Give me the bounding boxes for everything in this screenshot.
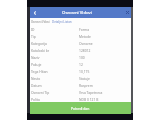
staticText: Statuje <box>79 76 90 80</box>
staticText: Rasprem <box>79 83 93 87</box>
staticText: Forma <box>79 27 89 31</box>
button[interactable]: Osnovni Vidovi <box>31 20 50 24</box>
button[interactable]: Tip <box>30 32 131 39</box>
staticText: Kataloski br <box>31 48 50 52</box>
button[interactable]: ID <box>30 25 131 32</box>
button[interactable]: Osnovni Tip <box>30 88 131 95</box>
staticText: Metode <box>79 34 91 38</box>
button[interactable]: Tega Hitan <box>30 67 131 74</box>
staticText: Tega Hitan <box>31 69 48 73</box>
staticText: Potvrdi dan <box>71 106 90 111</box>
staticText: 100 <box>79 55 85 59</box>
staticText: Osnovne <box>79 41 93 45</box>
staticText: Vrsa Tapetneca <box>79 90 103 94</box>
button[interactable]: Pakuje <box>30 60 131 67</box>
button[interactable]: Kataloski br <box>30 46 131 53</box>
button[interactable]: Datum <box>30 81 131 88</box>
staticText: Osnovni Vidovi <box>62 9 92 15</box>
staticText: Polita <box>31 97 40 101</box>
staticText: Kategorija <box>31 41 47 45</box>
button[interactable]: Back <box>31 9 39 17</box>
button[interactable]: Nesto <box>30 74 131 81</box>
staticText: Datum <box>31 83 42 87</box>
button[interactable]: Naziv <box>30 53 131 60</box>
button[interactable]: Close <box>124 9 131 16</box>
staticText: Pakuje <box>31 62 42 66</box>
button[interactable]: Kategorija <box>30 39 131 46</box>
staticText: 12 <box>79 62 83 66</box>
staticText: Nesto <box>31 76 41 80</box>
staticText: ID <box>31 27 35 31</box>
button[interactable]: Potvrdi dan <box>30 102 131 114</box>
staticText: NDB 0 121 B <box>79 97 99 101</box>
staticText: 10,175 <box>79 69 90 73</box>
button[interactable]: Polita <box>30 95 131 102</box>
staticText: Osnovni Tip <box>31 90 50 94</box>
staticText: Tip <box>31 34 36 38</box>
staticText: 128012 <box>79 48 91 52</box>
button[interactable]: Detaljni Listan <box>52 20 72 24</box>
staticText: Naziv <box>31 55 40 59</box>
